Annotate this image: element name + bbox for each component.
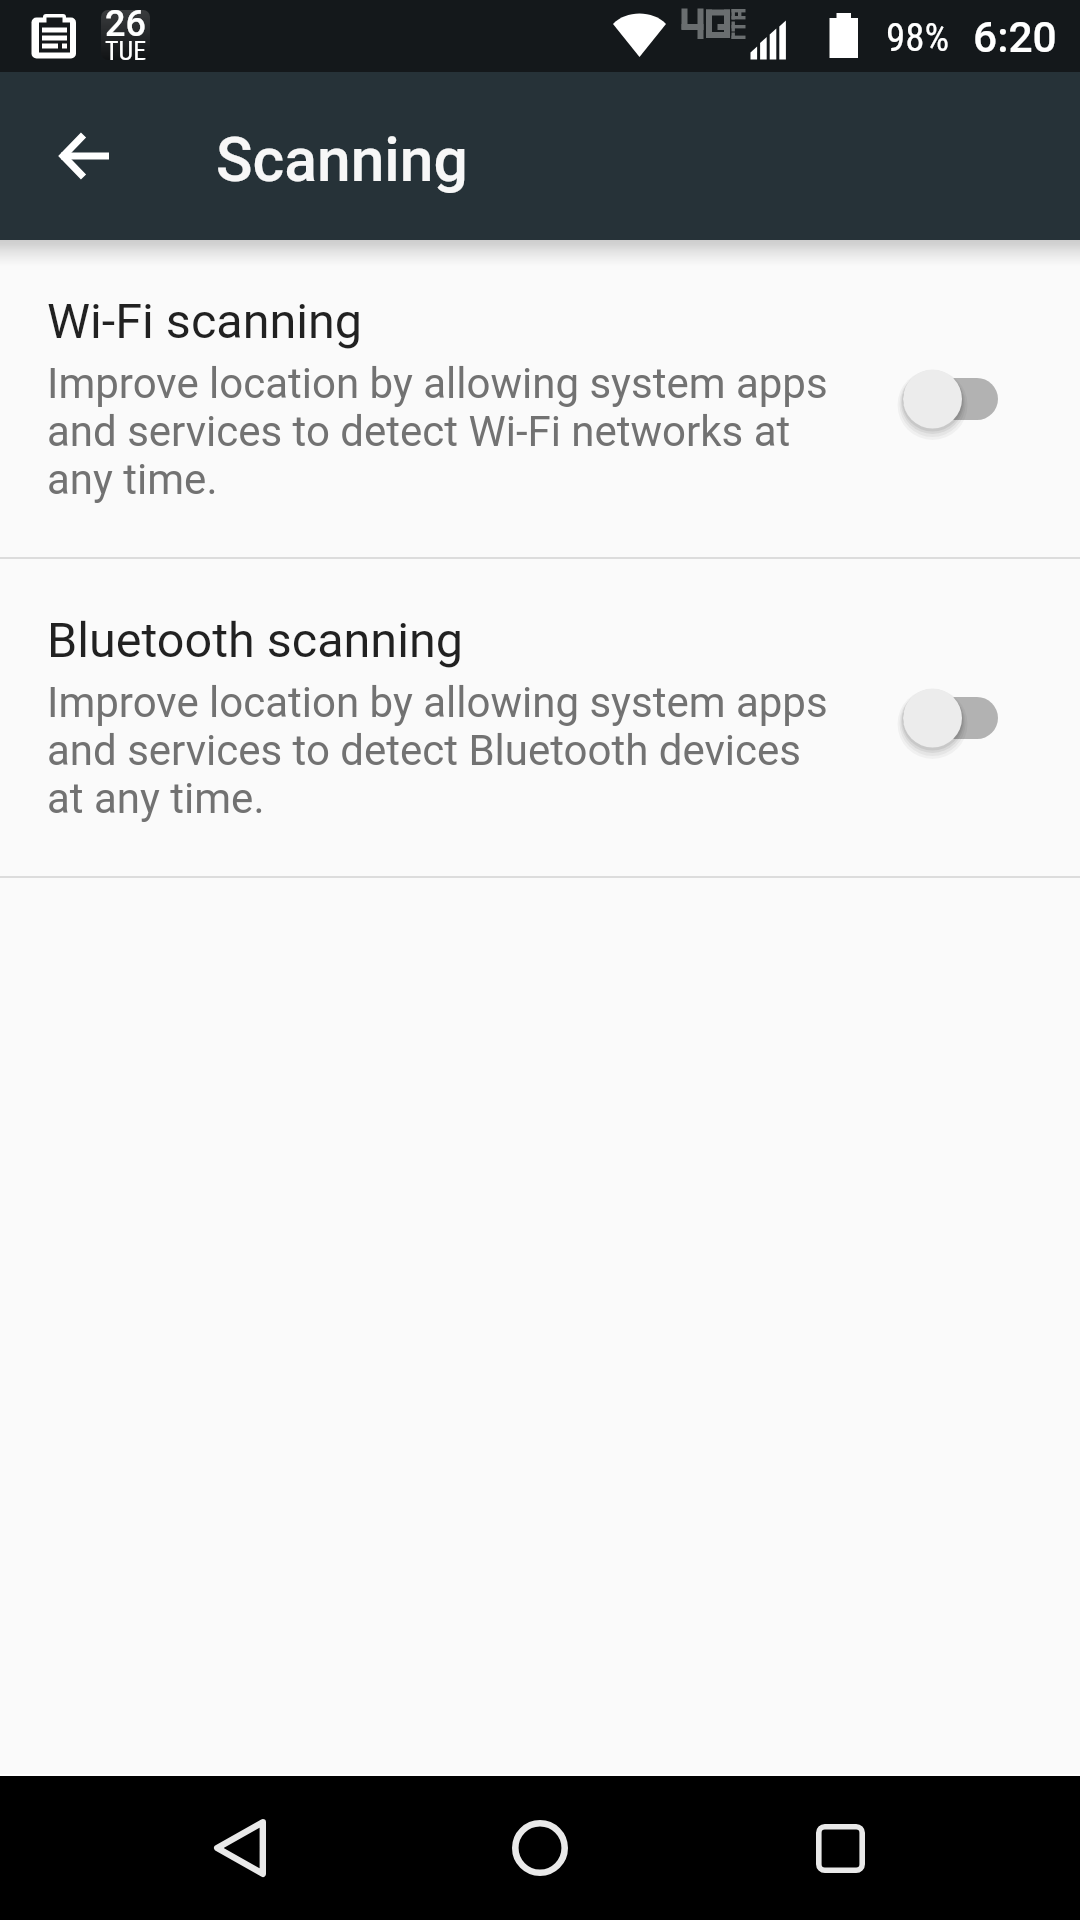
staticText: 6:20 (973, 13, 1057, 63)
staticText: Improve location by allowing system apps… (47, 678, 845, 824)
button[interactable]: Toggle scanning (873, 668, 1029, 768)
staticText: Bluetooth scanning (47, 612, 463, 669)
staticText: 98% (886, 15, 950, 61)
button[interactable]: Bluetooth scanning (0, 559, 1080, 876)
button[interactable]: Toggle scanning (873, 349, 1029, 449)
button[interactable]: Back (168, 1776, 312, 1920)
button[interactable]: Home (468, 1776, 612, 1920)
button[interactable]: Wi-Fi scanning (0, 240, 1080, 557)
staticText: TUE (105, 36, 147, 60)
staticText: Improve location by allowing system apps… (47, 359, 845, 505)
staticText: Scanning (216, 125, 468, 196)
button[interactable]: Recent apps (768, 1776, 912, 1920)
staticText: 26 (105, 10, 146, 45)
button[interactable]: Navigate up (24, 96, 144, 216)
staticText: Wi-Fi scanning (47, 293, 363, 350)
